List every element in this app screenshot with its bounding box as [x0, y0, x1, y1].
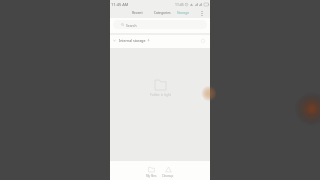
button[interactable]: My files: [144, 165, 159, 179]
staticText: My files: [146, 174, 157, 178]
button[interactable]: Cleanup: [160, 165, 176, 179]
staticText: 11:45 AM: [111, 2, 129, 7]
button[interactable]: Select all: [199, 37, 207, 45]
staticText: Cleanup: [162, 174, 174, 178]
staticText: Recent: [132, 10, 143, 14]
button[interactable]: Add: [203, 87, 216, 100]
button[interactable]: More options: [198, 9, 206, 17]
staticText: 11:45: [175, 2, 184, 7]
button[interactable]: Categories: [152, 8, 173, 16]
button[interactable]: Internal storage: [110, 33, 210, 48]
staticText: Search: [126, 23, 137, 27]
staticText: Folder is light: [150, 92, 171, 96]
staticText: Storage: [177, 10, 190, 14]
button[interactable]: Recent: [130, 8, 145, 16]
staticText: Internal storage: [119, 38, 146, 43]
button[interactable]: Storage: [175, 8, 192, 16]
staticText: Categories: [154, 10, 171, 14]
button[interactable]: Search: [113, 20, 207, 29]
